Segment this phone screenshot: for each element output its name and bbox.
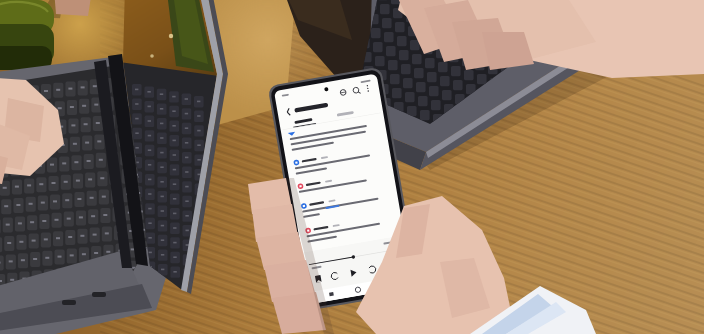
button[interactable]: Voice meeting transcript on phone held b… [0, 0, 704, 334]
